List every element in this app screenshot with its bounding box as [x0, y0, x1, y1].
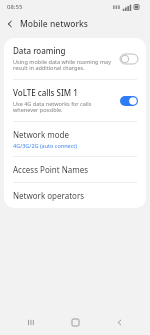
- button[interactable]: Recent apps: [18, 309, 44, 335]
- staticText: Network mode: [13, 129, 70, 140]
- staticText: Network operators: [13, 190, 85, 201]
- staticText: VoLTE calls SIM 1: [13, 87, 78, 98]
- button[interactable]: Back: [106, 309, 132, 335]
- button[interactable]: Data roaming: [4, 38, 146, 79]
- button[interactable]: Off: [120, 54, 138, 64]
- staticText: Data roaming: [13, 45, 66, 56]
- staticText: 08:55: [7, 3, 23, 11]
- staticText: Using mobile data while roaming may resu…: [13, 58, 115, 72]
- button[interactable]: On: [120, 96, 138, 106]
- staticText: Mobile networks: [20, 18, 88, 30]
- staticText: 4G/3G/2G (auto connect): [13, 142, 77, 149]
- button[interactable]: Network mode: [4, 122, 146, 156]
- button[interactable]: Back: [0, 14, 20, 34]
- staticText: Use 4G data networks for calls whenever …: [13, 100, 115, 114]
- button[interactable]: VoLTE calls SIM 1: [4, 80, 146, 121]
- button[interactable]: Home: [62, 309, 88, 335]
- button[interactable]: Network operators: [4, 183, 146, 208]
- staticText: Access Point Names: [13, 164, 89, 175]
- button[interactable]: Access Point Names: [4, 157, 146, 182]
